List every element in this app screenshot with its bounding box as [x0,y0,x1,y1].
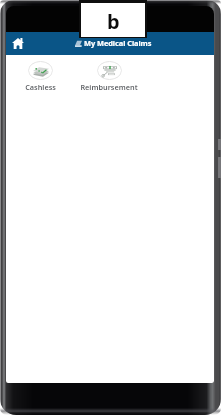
staticText: Reimbursement [80,82,138,92]
staticText: My Medical Claims [84,38,152,48]
staticText: Cashless [25,82,56,92]
staticText: b [107,8,120,35]
button[interactable]: Reimbursement [79,61,139,92]
button[interactable]: Home [10,36,26,51]
button[interactable]: Cashless [10,61,70,92]
